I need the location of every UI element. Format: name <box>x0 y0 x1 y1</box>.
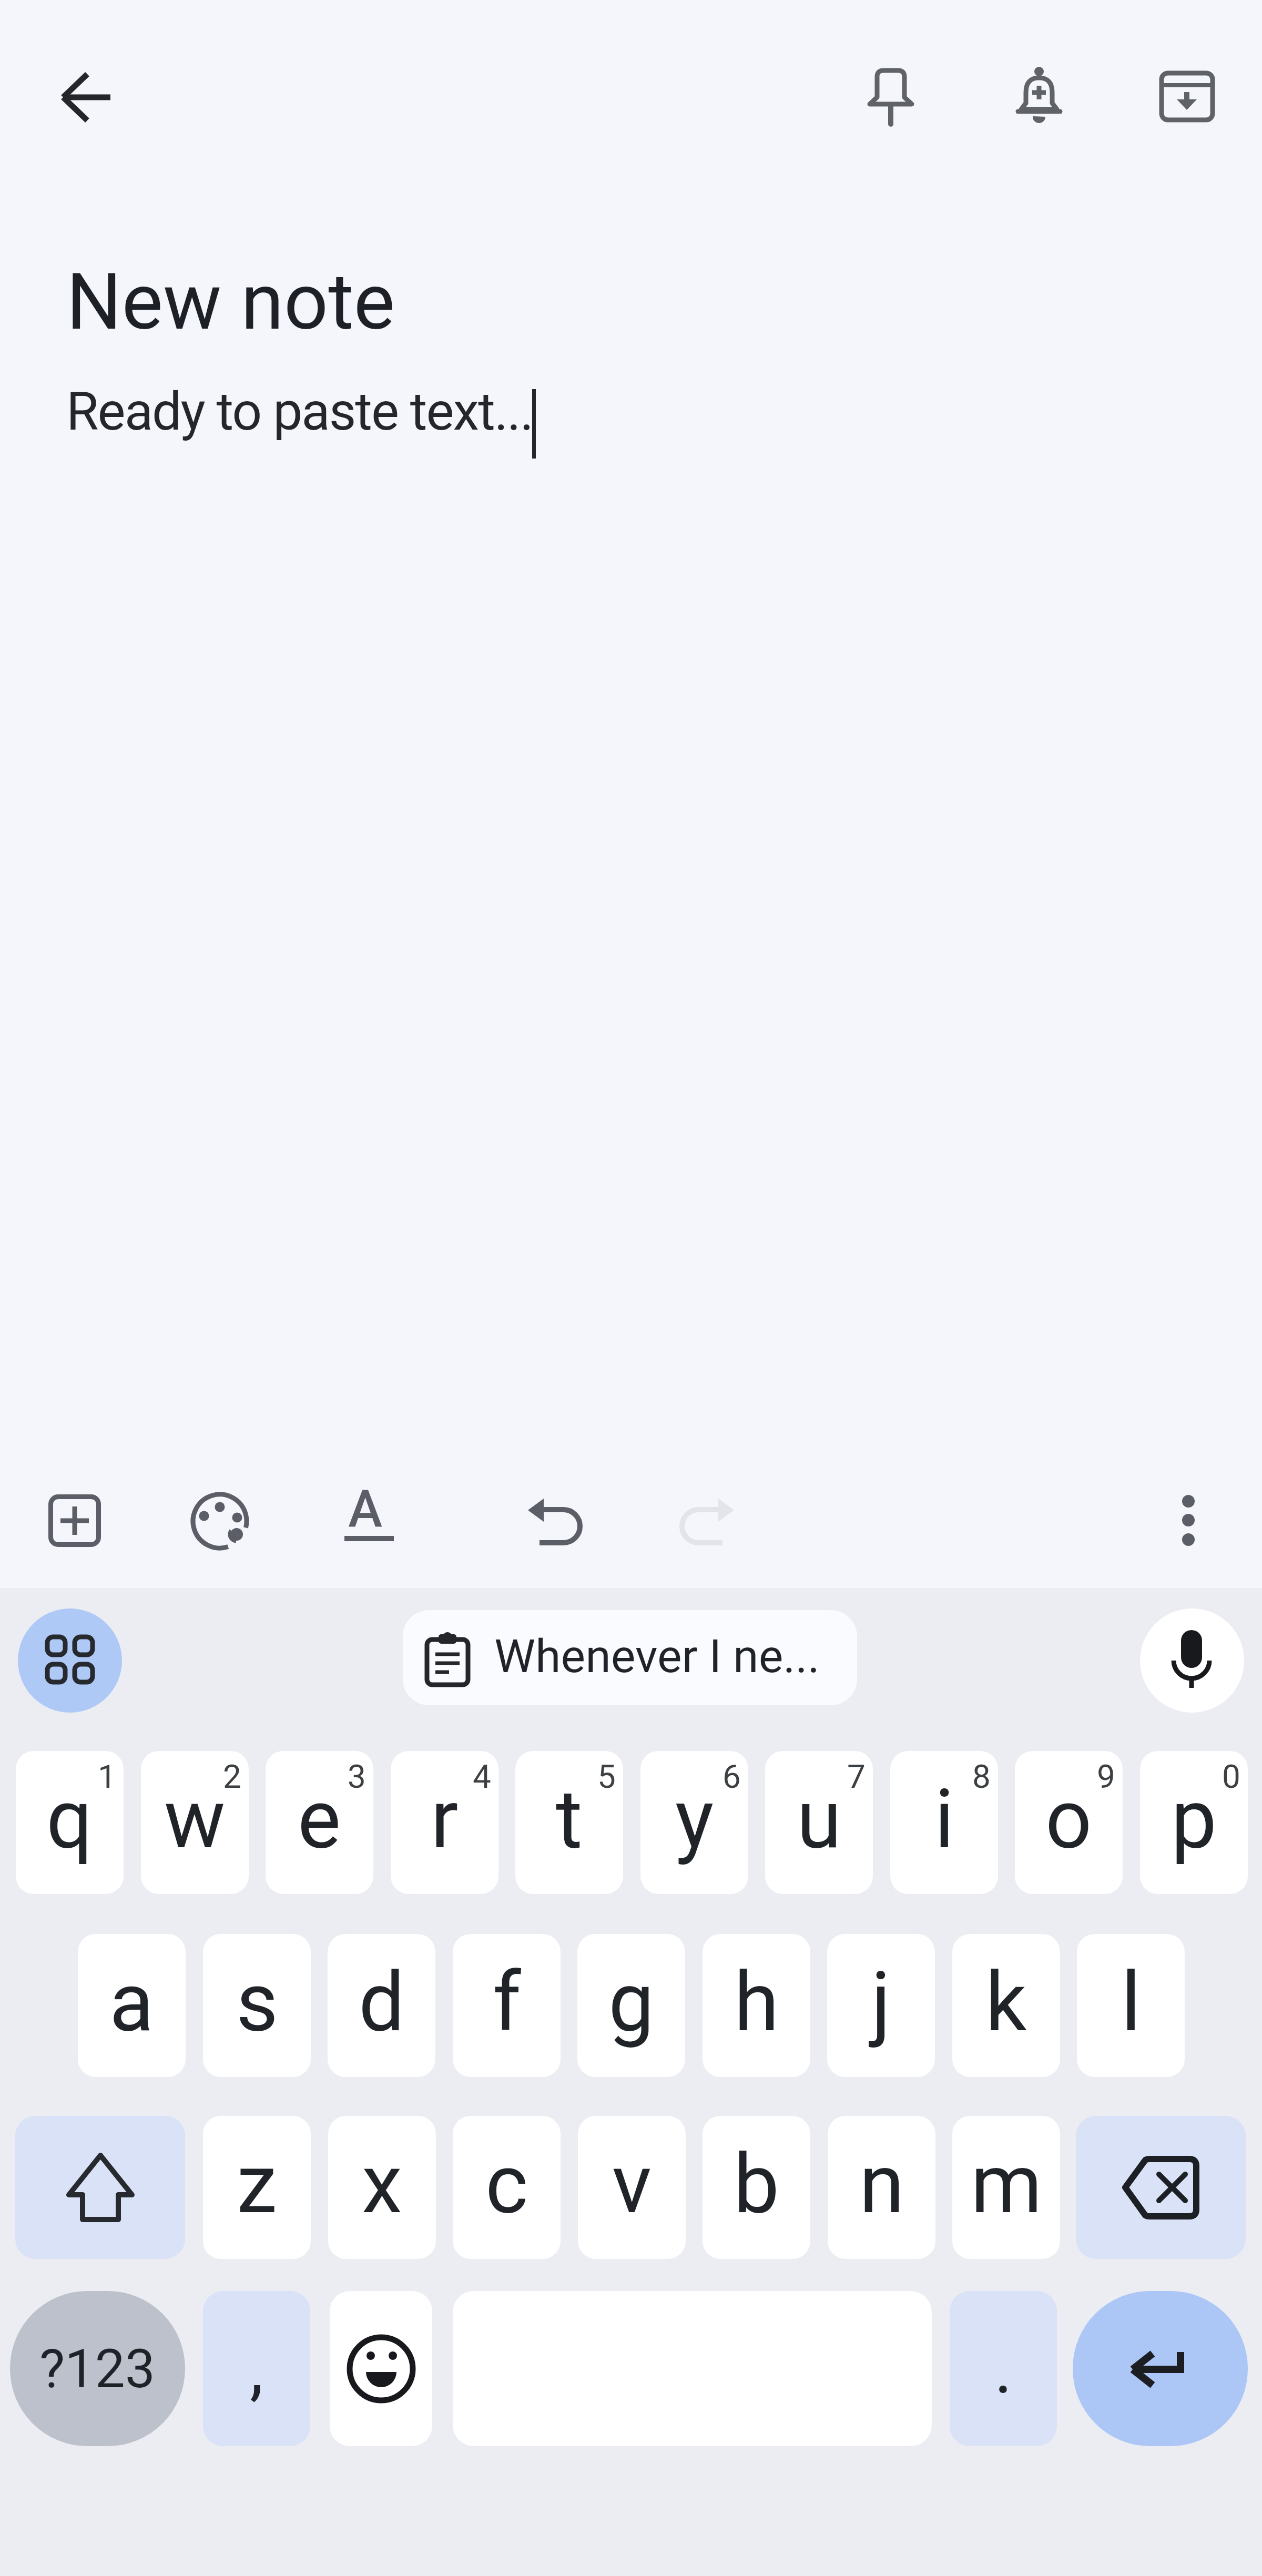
staticText: c <box>485 2136 528 2232</box>
staticText: j <box>871 1954 891 2050</box>
staticText: t <box>556 1771 583 1867</box>
staticText: . <box>994 2329 1013 2409</box>
staticText: 4 <box>473 1757 491 1796</box>
staticText: 2 <box>223 1757 241 1796</box>
staticText: m <box>971 2136 1042 2232</box>
staticText: a <box>109 1954 154 2050</box>
staticText: Ready to paste text... <box>66 381 533 442</box>
staticText: u <box>797 1771 842 1867</box>
staticText: d <box>359 1954 405 2050</box>
staticText: g <box>608 1954 655 2050</box>
staticText: 9 <box>1097 1757 1115 1796</box>
staticText: l <box>1121 1954 1141 2050</box>
staticText: New note <box>66 257 395 348</box>
staticText: 8 <box>972 1757 991 1796</box>
staticText: 7 <box>847 1757 866 1796</box>
staticText: y <box>675 1771 714 1867</box>
staticText: 5 <box>597 1757 616 1796</box>
staticText: h <box>734 1954 779 2050</box>
staticText: 3 <box>348 1757 366 1796</box>
staticText: i <box>934 1771 954 1867</box>
staticText: n <box>859 2136 904 2232</box>
staticText: x <box>362 2136 402 2232</box>
staticText: s <box>236 1954 278 2050</box>
staticText: f <box>493 1954 521 2050</box>
staticText: o <box>1045 1771 1092 1867</box>
staticText: p <box>1171 1771 1217 1867</box>
staticText: , <box>250 2329 263 2409</box>
staticText: 1 <box>98 1757 116 1796</box>
staticText: 0 <box>1222 1757 1240 1796</box>
staticText: z <box>237 2136 277 2232</box>
staticText: e <box>298 1771 341 1867</box>
staticText: A <box>348 1479 383 1539</box>
staticText: w <box>164 1771 226 1867</box>
staticText: k <box>985 1954 1027 2050</box>
staticText: b <box>734 2136 780 2232</box>
staticText: Whenever I ne... <box>494 1629 820 1683</box>
staticText: v <box>612 2136 652 2232</box>
staticText: 6 <box>722 1757 741 1796</box>
staticText: q <box>46 1771 93 1867</box>
staticText: r <box>431 1771 459 1867</box>
staticText: ?123 <box>39 2337 156 2400</box>
